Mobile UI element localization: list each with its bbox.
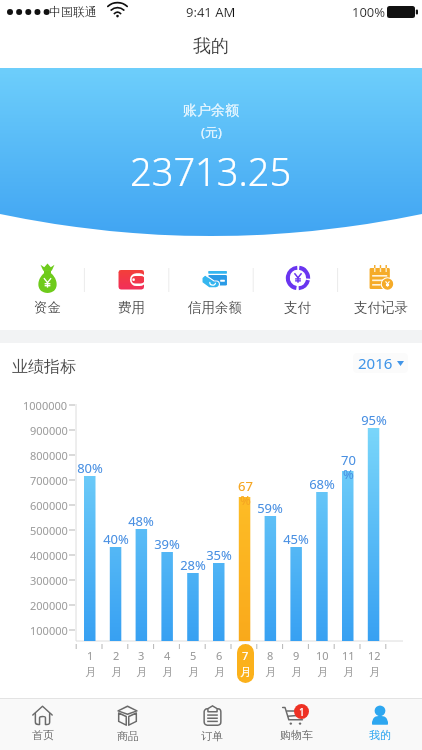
staticText: 500000 [30, 523, 68, 538]
staticText: 8 [267, 648, 274, 663]
button[interactable]: 我的 [338, 699, 422, 742]
staticText: 首页 [32, 728, 54, 742]
staticText: 2016 [358, 353, 393, 373]
button[interactable]: 订单 [170, 699, 254, 743]
button[interactable]: 支付记录 [339, 242, 422, 316]
staticText: 95% [361, 411, 387, 429]
staticText: 700000 [30, 473, 68, 488]
staticText: 我的 [369, 728, 391, 742]
staticText: 35% [206, 546, 232, 564]
button[interactable]: 商品 [85, 699, 170, 743]
staticText: 4 [164, 648, 171, 663]
staticText: 月 [265, 665, 276, 679]
staticText: 费用 [118, 299, 145, 316]
staticText: 400000 [30, 548, 68, 563]
staticText: 7 [242, 648, 249, 663]
staticText: 我的 [193, 35, 229, 58]
staticText: 资金 [34, 299, 61, 316]
staticText: 39% [154, 535, 180, 553]
staticText: 300000 [30, 573, 68, 588]
staticText: 业绩指标 [12, 357, 76, 377]
staticText: 10 [316, 648, 329, 663]
staticText: 月 [343, 665, 354, 679]
staticText: 1 [87, 648, 94, 663]
staticText: 中国联通 [49, 4, 97, 19]
button[interactable]: 1 [254, 699, 338, 742]
staticText: 68% [309, 475, 335, 493]
staticText: 5 [190, 648, 197, 663]
staticText: 48% [128, 512, 154, 530]
staticText: 800000 [30, 448, 68, 463]
staticText: 月 [111, 665, 122, 679]
staticText: 3 [138, 648, 145, 663]
staticText: 月 [162, 665, 173, 679]
staticText: 支付记录 [354, 299, 408, 316]
staticText: 11 [342, 648, 355, 663]
staticText: 月 [369, 665, 380, 679]
staticText: 12 [368, 648, 381, 663]
staticText: 900000 [30, 423, 68, 438]
button[interactable]: 支付 [256, 242, 339, 316]
staticText: 200000 [30, 598, 68, 613]
staticText: 600000 [30, 498, 68, 513]
button[interactable]: 费用 [89, 242, 173, 316]
staticText: 23713.25 [130, 145, 292, 197]
button[interactable]: 首页 [0, 699, 85, 742]
staticText: 月 [188, 665, 199, 679]
staticText: 1 [299, 705, 305, 719]
staticText: 1000000 [23, 398, 68, 413]
button[interactable]: 资金 [5, 242, 89, 316]
staticText: 2 [113, 648, 120, 663]
staticText: 45% [283, 530, 309, 548]
staticText: (元) [201, 123, 222, 141]
staticText: 月 [136, 665, 147, 679]
staticText: 67 % [238, 477, 253, 509]
staticText: 100000 [30, 623, 68, 638]
staticText: 59% [257, 499, 283, 517]
staticText: 月 [291, 665, 302, 679]
staticText: 支付 [284, 299, 311, 316]
staticText: 70 % [341, 451, 356, 483]
button[interactable]: 2016 [353, 353, 408, 373]
staticText: 月 [317, 665, 328, 679]
staticText: 28% [180, 556, 206, 574]
staticText: 9:41 AM [186, 3, 236, 21]
staticText: 100% [352, 3, 386, 21]
button[interactable]: 信用余额 [173, 242, 256, 316]
staticText: 月 [214, 665, 225, 679]
staticText: 月 [240, 665, 251, 679]
staticText: 9 [293, 648, 300, 663]
staticText: 订单 [201, 729, 223, 743]
staticText: 月 [85, 665, 96, 679]
staticText: 40% [103, 530, 129, 548]
staticText: 80% [77, 459, 103, 477]
staticText: 商品 [117, 729, 139, 743]
staticText: 购物车 [280, 728, 313, 742]
staticText: 账户余额 [183, 102, 239, 120]
staticText: 信用余额 [188, 299, 242, 316]
staticText: 6 [216, 648, 223, 663]
